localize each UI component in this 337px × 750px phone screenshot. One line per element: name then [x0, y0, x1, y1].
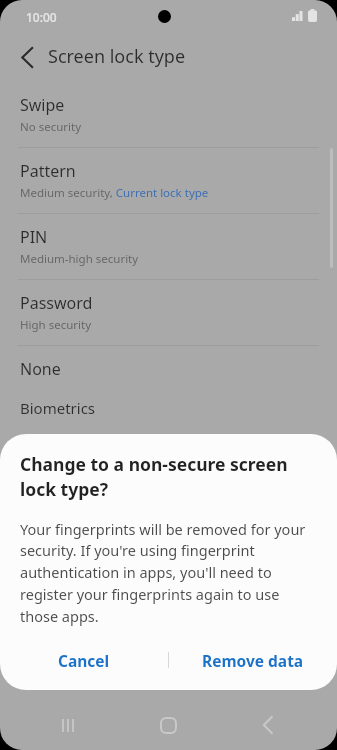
staticText: None: [20, 358, 61, 380]
staticText: PIN: [20, 226, 48, 248]
button[interactable]: Password: [0, 280, 337, 345]
button[interactable]: None: [0, 346, 337, 392]
staticText: Medium-high security: [20, 251, 139, 267]
button[interactable]: Pattern: [0, 148, 337, 213]
staticText: Biometrics: [20, 398, 96, 418]
staticText: 10:00: [26, 9, 57, 25]
button[interactable]: PIN: [0, 214, 337, 279]
staticText: High security: [20, 317, 92, 333]
staticText: Swipe: [20, 94, 65, 116]
staticText: Cancel: [58, 650, 110, 671]
button[interactable]: Remove data: [169, 638, 337, 682]
button[interactable]: Recents: [52, 709, 84, 741]
button[interactable]: Back: [252, 709, 284, 741]
button[interactable]: Swipe: [0, 82, 337, 147]
button[interactable]: Home: [152, 709, 184, 741]
staticText: Remove data: [202, 650, 304, 671]
button[interactable]: Back: [10, 40, 44, 74]
staticText: Screen lock type: [48, 44, 186, 69]
staticText: Change to a non-secure screen lock type?: [20, 452, 313, 501]
staticText: Pattern: [20, 160, 76, 182]
staticText: Password: [20, 292, 93, 314]
staticText: Your fingerprints will be removed for yo…: [20, 519, 313, 627]
staticText: Medium security, Current lock type: [20, 185, 209, 201]
staticText: No security: [20, 119, 82, 135]
button[interactable]: Cancel: [0, 638, 168, 682]
